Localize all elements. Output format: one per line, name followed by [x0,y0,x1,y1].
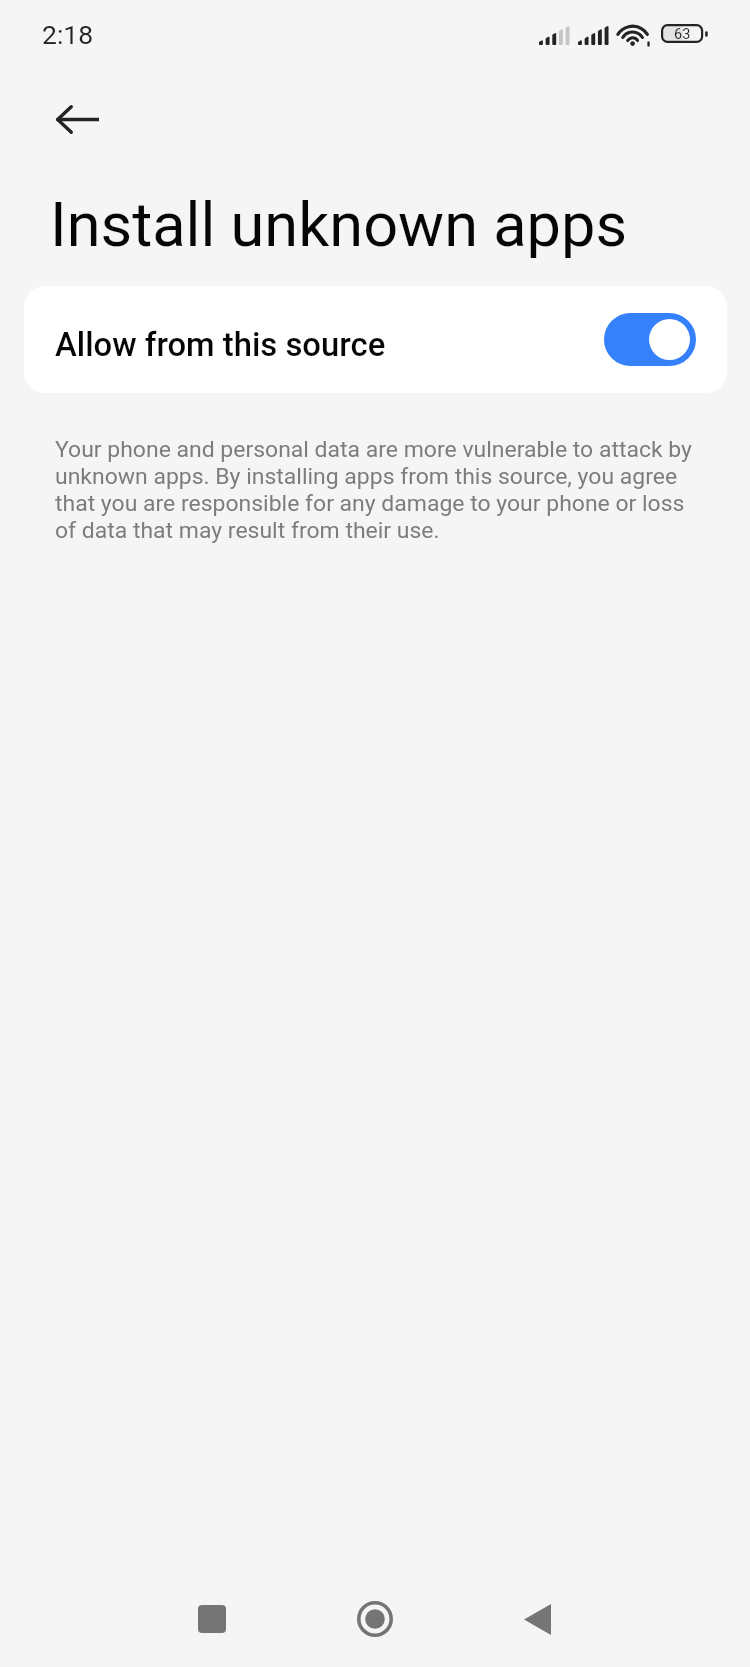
button[interactable]: Home [319,1563,431,1667]
button[interactable]: Back [481,1563,593,1667]
staticText: Install unknown apps [50,189,628,261]
button[interactable]: Allow from this source [24,286,727,393]
staticText: Your phone and personal data are more vu… [55,436,700,544]
staticText: 63 [674,26,691,43]
button[interactable]: Recent apps [156,1563,268,1667]
staticText: 2:18 [42,19,94,50]
staticText: Allow from this source [55,326,386,364]
button[interactable]: Allow from this source [604,313,696,366]
button[interactable]: Back [45,87,109,151]
